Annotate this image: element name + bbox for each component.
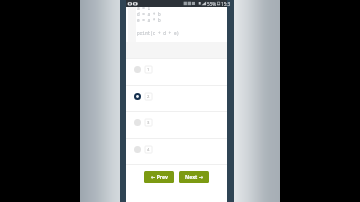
button[interactable]: ← Prev — [144, 171, 174, 183]
staticText: ← Prev — [151, 174, 168, 181]
staticText: 3 — [147, 120, 150, 126]
staticText: e = a * b — [137, 17, 161, 23]
staticText: 4 — [147, 147, 150, 153]
staticText: a = 1 — [137, 5, 151, 11]
staticText: 55% — [207, 1, 217, 7]
staticText: print(c + d + e) — [137, 30, 180, 36]
button[interactable]: 1 — [126, 58, 227, 85]
button[interactable]: 3 — [126, 111, 227, 138]
staticText: 1 — [147, 67, 150, 73]
button[interactable]: 4 — [126, 138, 227, 165]
staticText: d = a + b — [137, 11, 161, 17]
button[interactable]: Next → — [179, 171, 209, 183]
staticText: 15:3 — [221, 1, 231, 7]
staticText: 2 — [147, 94, 150, 100]
staticText: Next → — [185, 174, 203, 181]
button[interactable]: 2 — [126, 85, 227, 112]
